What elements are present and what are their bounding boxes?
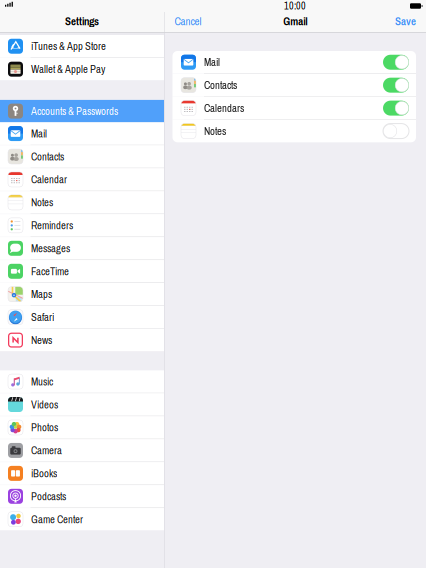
- button[interactable]: Reminders: [0, 214, 164, 236]
- staticText: Save: [395, 14, 416, 29]
- staticText: FaceTime: [31, 264, 69, 278]
- staticText: Safari: [31, 310, 54, 324]
- button[interactable]: FaceTime: [0, 260, 164, 282]
- staticText: Wallet & Apple Pay: [31, 62, 105, 76]
- staticText: Camera: [31, 443, 62, 458]
- staticText: Gmail: [283, 14, 307, 29]
- button[interactable]: Maps: [0, 283, 164, 305]
- button[interactable]: Contacts: [172, 74, 416, 96]
- button[interactable]: Mail: [0, 122, 164, 145]
- staticText: iBooks: [31, 466, 57, 481]
- staticText: Game Center: [31, 512, 83, 526]
- staticText: Reminders: [31, 218, 73, 233]
- button[interactable]: Accounts & Passwords: [0, 100, 164, 122]
- staticText: Mail: [204, 55, 220, 69]
- staticText: 10:00: [284, 0, 306, 13]
- staticText: Messages: [31, 241, 70, 255]
- staticText: Accounts & Passwords: [31, 104, 118, 118]
- staticText: iTunes & App Store: [31, 39, 106, 53]
- button[interactable]: Calendars: [172, 97, 416, 119]
- button[interactable]: Game Center: [0, 508, 164, 530]
- button[interactable]: News: [0, 329, 164, 351]
- button[interactable]: Notes: [172, 120, 416, 142]
- staticText: News: [31, 333, 52, 347]
- staticText: Notes: [31, 195, 53, 210]
- staticText: Contacts: [204, 78, 237, 92]
- staticText: Photos: [31, 420, 58, 435]
- staticText: Maps: [31, 287, 52, 301]
- staticText: Contacts: [31, 149, 64, 164]
- staticText: Mail: [31, 126, 47, 141]
- staticText: Calendar: [31, 172, 67, 187]
- staticText: Calendars: [204, 101, 244, 115]
- button[interactable]: iBooks: [0, 462, 164, 484]
- staticText: Notes: [204, 124, 226, 138]
- button[interactable]: Wallet & Apple Pay: [0, 58, 164, 80]
- button[interactable]: Camera: [0, 439, 164, 462]
- button[interactable]: Notes: [0, 191, 164, 214]
- staticText: Music: [31, 374, 53, 389]
- button[interactable]: Safari: [0, 306, 164, 328]
- button[interactable]: Calendar: [0, 168, 164, 191]
- button[interactable]: iTunes & App Store: [0, 35, 164, 57]
- button[interactable]: Photos: [0, 416, 164, 439]
- staticText: Podcasts: [31, 489, 66, 503]
- staticText: Settings: [65, 14, 99, 29]
- button[interactable]: Save: [395, 15, 416, 30]
- button[interactable]: Podcasts: [0, 485, 164, 507]
- button[interactable]: Contacts: [0, 145, 164, 168]
- staticText: Videos: [31, 397, 58, 412]
- button[interactable]: Cancel: [174, 15, 201, 30]
- button[interactable]: Videos: [0, 393, 164, 416]
- button[interactable]: Music: [0, 370, 164, 393]
- staticText: Cancel: [174, 14, 201, 29]
- button[interactable]: Mail: [172, 51, 416, 73]
- button[interactable]: Messages: [0, 237, 164, 259]
